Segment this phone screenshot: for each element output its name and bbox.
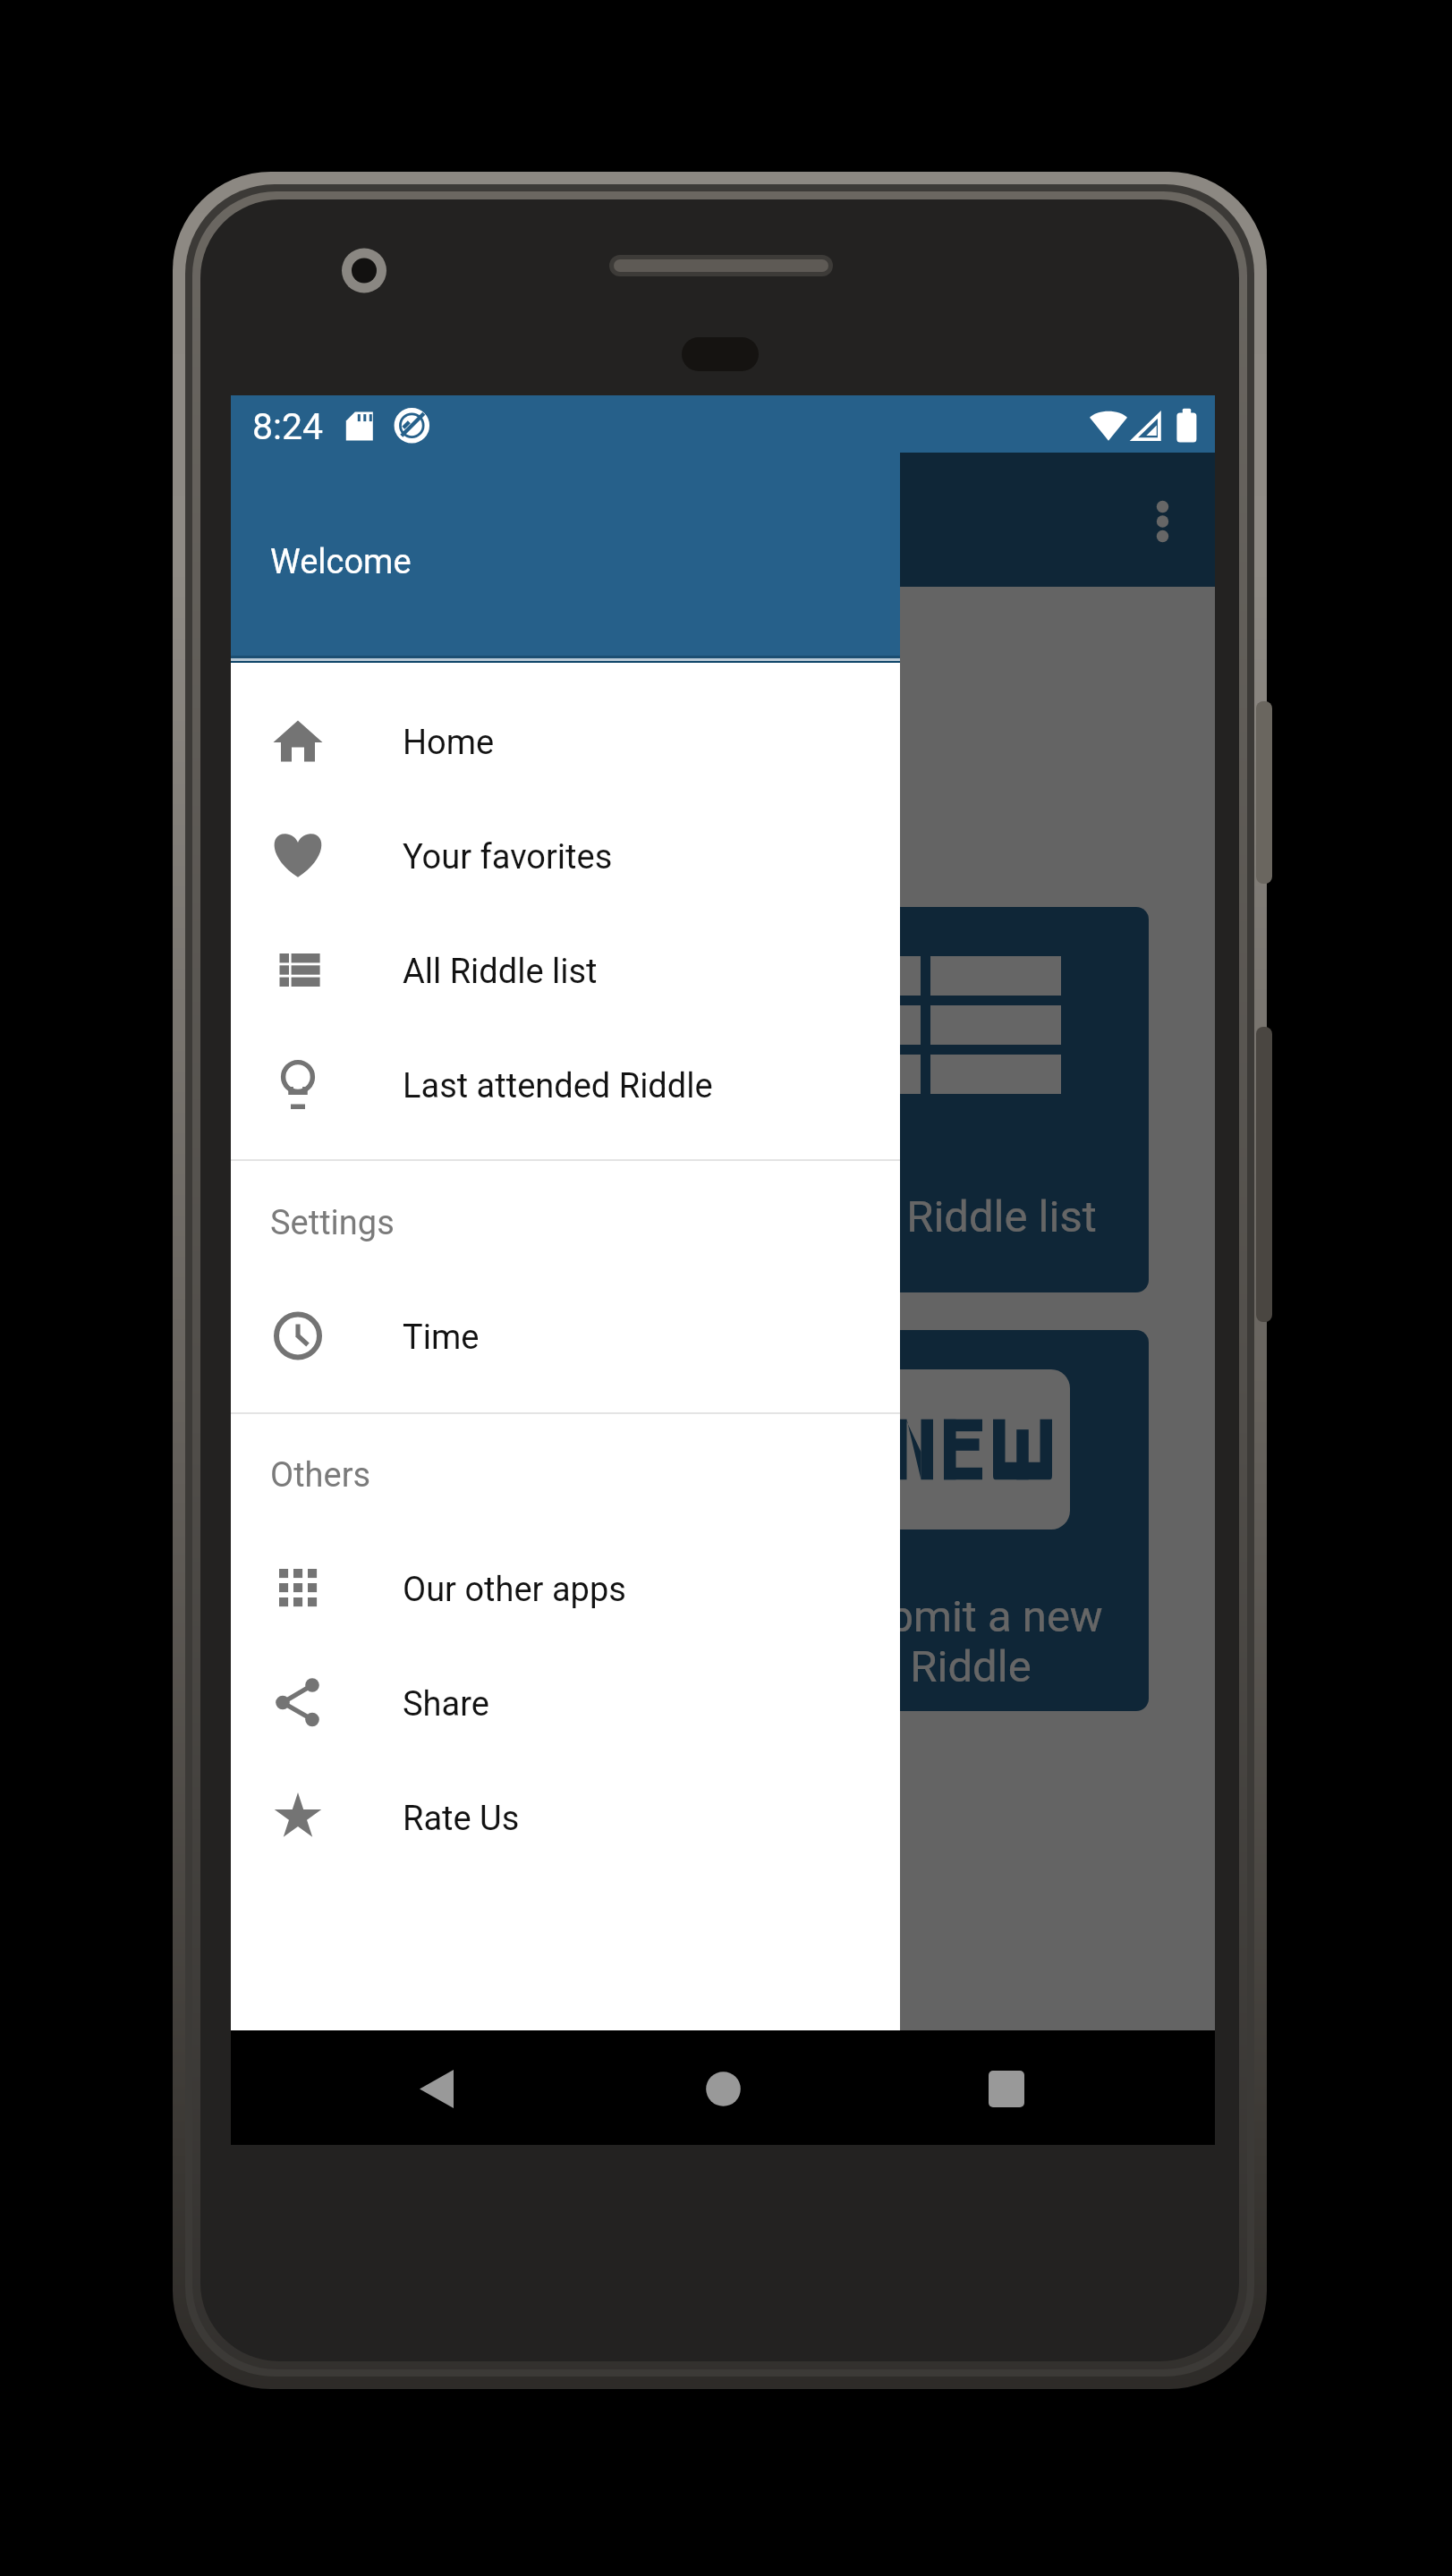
staticText: Rate Us xyxy=(403,1799,520,1839)
staticText: All Riddle list xyxy=(845,1191,1097,1242)
staticText: All Riddle list xyxy=(353,1191,605,1242)
staticText: 8:24 xyxy=(252,405,324,448)
button[interactable]: All Riddle list xyxy=(301,907,657,1292)
button[interactable]: All Riddle list xyxy=(231,914,900,1029)
button[interactable]: Our other apps xyxy=(231,1532,900,1647)
button[interactable]: Last attended Riddle xyxy=(231,1029,900,1143)
staticText: Time xyxy=(403,1318,480,1358)
button[interactable]: Home xyxy=(231,685,900,800)
button[interactable]: Time xyxy=(231,1280,900,1394)
button[interactable]: Back xyxy=(383,2034,490,2141)
button[interactable]: All Riddle list xyxy=(793,907,1149,1292)
staticText: Our other apps xyxy=(403,1570,626,1610)
button[interactable]: More options xyxy=(1110,468,1215,572)
staticText: Your favorites xyxy=(403,837,613,877)
staticText: Share xyxy=(403,1684,489,1724)
button[interactable]: Home xyxy=(669,2034,777,2141)
button[interactable]: Share xyxy=(231,1647,900,1761)
staticText: Settings xyxy=(270,1203,395,1243)
staticText: Welcome xyxy=(270,542,412,582)
staticText: Others xyxy=(270,1455,371,1496)
button[interactable]: Submit a new Riddle xyxy=(793,1330,1149,1711)
button[interactable]: Submit a new Riddle xyxy=(301,1330,657,1711)
staticText: Submit a new Riddle xyxy=(346,1591,611,1692)
button[interactable]: Recent apps xyxy=(951,2034,1058,2141)
staticText: Submit a new Riddle xyxy=(838,1591,1103,1692)
button[interactable]: Rate Us xyxy=(231,1761,900,1876)
button[interactable]: Your favorites xyxy=(231,800,900,914)
staticText: All Riddle list xyxy=(403,952,598,992)
staticText: Last attended Riddle xyxy=(403,1066,713,1106)
staticText: Home xyxy=(403,723,495,763)
